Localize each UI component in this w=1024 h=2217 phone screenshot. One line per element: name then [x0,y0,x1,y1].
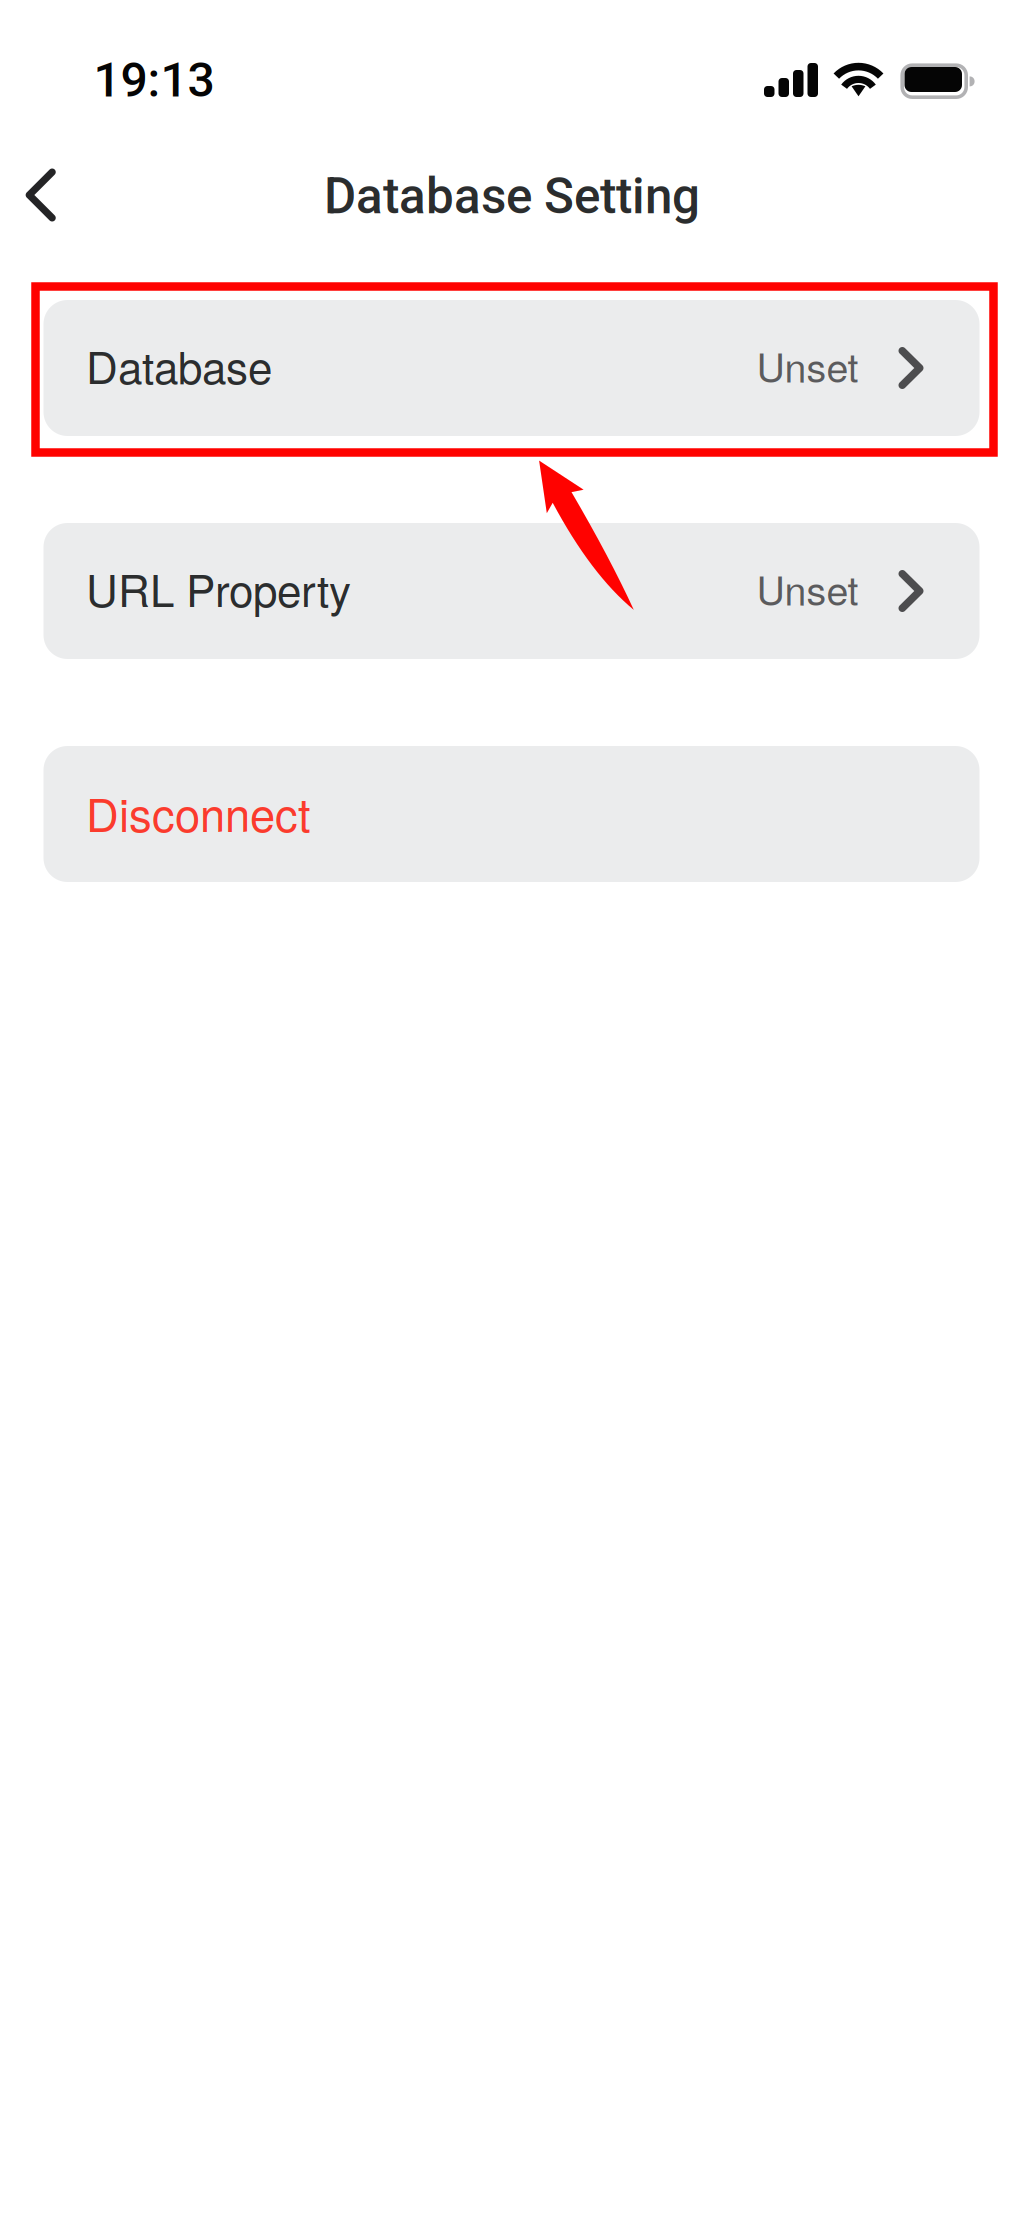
staticText: Unset [756,337,858,394]
staticText: Database Setting [324,168,700,225]
staticText: Database [86,333,272,396]
staticText: 19:13 [93,52,214,108]
button[interactable]: Back [1,155,81,235]
button[interactable]: Disconnect [43,746,979,882]
staticText: URL Property [86,556,351,619]
staticText: Disconnect [86,780,311,845]
button[interactable]: URL Property [43,523,979,659]
staticText: Unset [756,560,858,617]
button[interactable]: Database [43,300,979,436]
